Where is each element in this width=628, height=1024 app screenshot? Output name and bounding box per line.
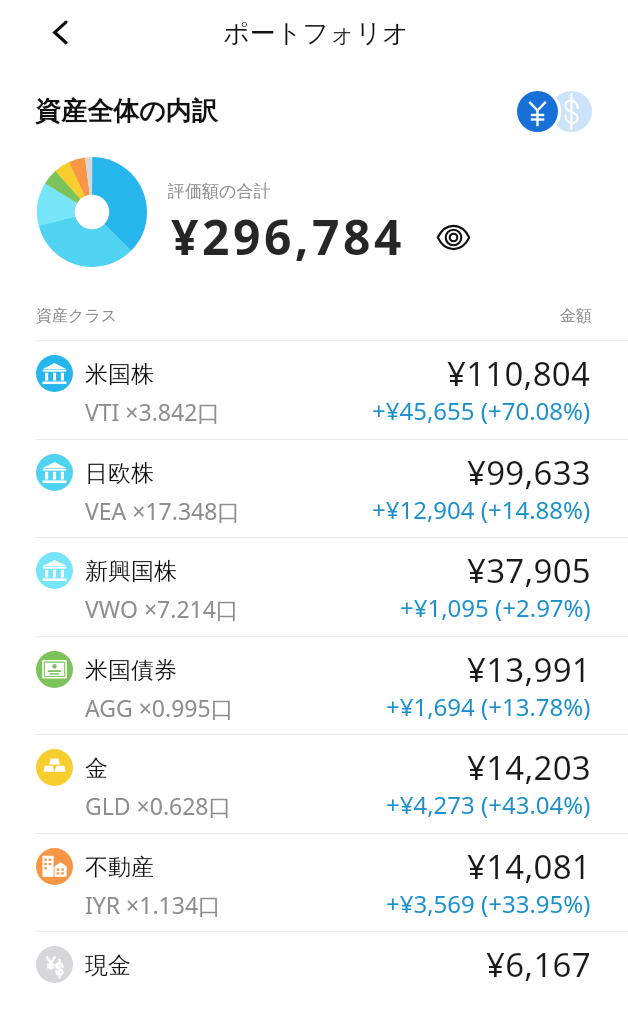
staticText: +¥45,655 (+70.08%) [372,394,591,427]
staticText: ¥13,991 [467,647,591,692]
staticText: VTI ×3.842口 [85,396,221,427]
staticText: 評価額の合計 [168,181,271,202]
button[interactable] [0,833,628,932]
staticText: 不動産 [85,853,154,882]
staticText: AGG ×0.995口 [85,692,234,723]
staticText: VWO ×7.214口 [85,593,239,624]
staticText: VEA ×17.348口 [85,495,241,526]
staticText: +¥3,569 (+33.95%) [386,887,591,920]
staticText: IYR ×1.134口 [85,889,222,920]
button[interactable] [0,931,628,1024]
staticText: ¥99,633 [467,450,591,495]
staticText: 新興国株 [85,557,177,586]
button[interactable] [0,537,628,636]
staticText: +¥12,904 (+14.88%) [372,493,591,526]
button[interactable] [0,340,628,439]
button[interactable]: Currency JPY USD [517,91,592,132]
staticText: 米国株 [85,360,154,389]
button[interactable] [0,439,628,538]
staticText: +¥4,273 (+43.04%) [386,788,591,821]
button[interactable]: Hide balance [434,218,473,257]
button[interactable] [0,734,628,833]
staticText: 資産全体の内訳 [35,95,218,128]
staticText: ポートフォリオ [223,17,409,50]
staticText: 現金 [85,951,131,980]
staticText: 金 [85,754,108,783]
button[interactable]: Back [39,11,81,53]
staticText: +¥1,095 (+2.97%) [400,591,591,624]
staticText: ¥14,081 [467,844,591,889]
staticText: +¥1,694 (+13.78%) [386,690,591,723]
staticText: 金額 [560,306,592,326]
staticText: 資産クラス [36,306,118,326]
staticText: 米国債券 [85,656,177,685]
staticText: GLD ×0.628口 [85,790,232,821]
staticText: ¥14,203 [467,745,591,790]
button[interactable] [0,636,628,735]
staticText: ¥296,784 [171,204,405,269]
staticText: 日欧株 [85,459,154,488]
staticText: ¥37,905 [467,548,591,593]
staticText: ¥110,804 [447,351,591,396]
staticText: ¥6,167 [486,942,591,987]
